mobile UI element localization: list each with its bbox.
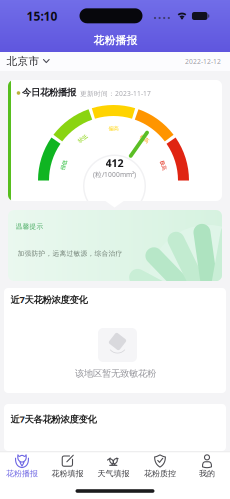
staticText: 近7天各花粉浓度变化 [10,413,96,425]
staticText: 该地区暂无致敏花粉 [75,368,156,379]
staticText: 很低 [59,162,69,169]
staticText: 花粉播报 [6,469,38,478]
staticText: 较低 [78,135,88,142]
staticText: 极高 [158,162,168,169]
button[interactable]: 花粉质控 [138,448,182,488]
button[interactable]: 花粉填报 [45,448,89,488]
button[interactable]: 花粉播报 [0,448,44,488]
staticText: 15:10 [26,8,57,24]
staticText: 花粉填报 [51,469,83,478]
staticText: (粒/1000mm²) [93,170,136,179]
staticText: 温馨提示 [15,222,43,231]
staticText: 花粉质控 [144,469,176,478]
staticText: 2022-12-12 [185,57,221,66]
staticText: 天气填报 [97,469,129,478]
staticText: 412 [105,156,123,170]
staticText: 很高 [139,135,149,142]
staticText: 花粉播报 [93,34,137,47]
button[interactable]: 北京市 [6,55,49,68]
staticText: 近7天花粉浓度变化 [10,293,87,306]
staticText: 加强防护，远离过敏源，综合治疗 [17,249,122,258]
staticText: 偏高 [108,125,118,132]
button[interactable]: 我的 [185,448,229,488]
staticText: 北京市 [6,55,39,68]
staticText: 更新时间：2023-11-17 [80,89,151,98]
staticText: 今日花粉播报 [22,87,76,98]
button[interactable]: 天气填报 [91,448,135,488]
staticText: 我的 [199,469,215,478]
